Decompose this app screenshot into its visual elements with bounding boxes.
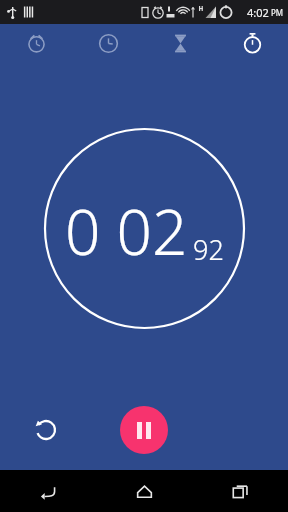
button[interactable]: Pause: [120, 406, 168, 454]
staticText: PM: [271, 7, 284, 18]
button[interactable]: Timer: [144, 24, 216, 63]
button[interactable]: Recent apps: [192, 470, 288, 512]
button[interactable]: Alarm: [0, 24, 72, 63]
staticText: 4:02: [247, 5, 269, 20]
staticText: 92: [193, 231, 224, 268]
button[interactable]: Reset: [22, 406, 70, 454]
button[interactable]: Clock: [72, 24, 144, 63]
button[interactable]: Back: [0, 470, 96, 512]
button[interactable]: Stopwatch: [216, 24, 288, 63]
button[interactable]: Home: [96, 470, 192, 512]
staticText: 0 02: [65, 189, 188, 273]
